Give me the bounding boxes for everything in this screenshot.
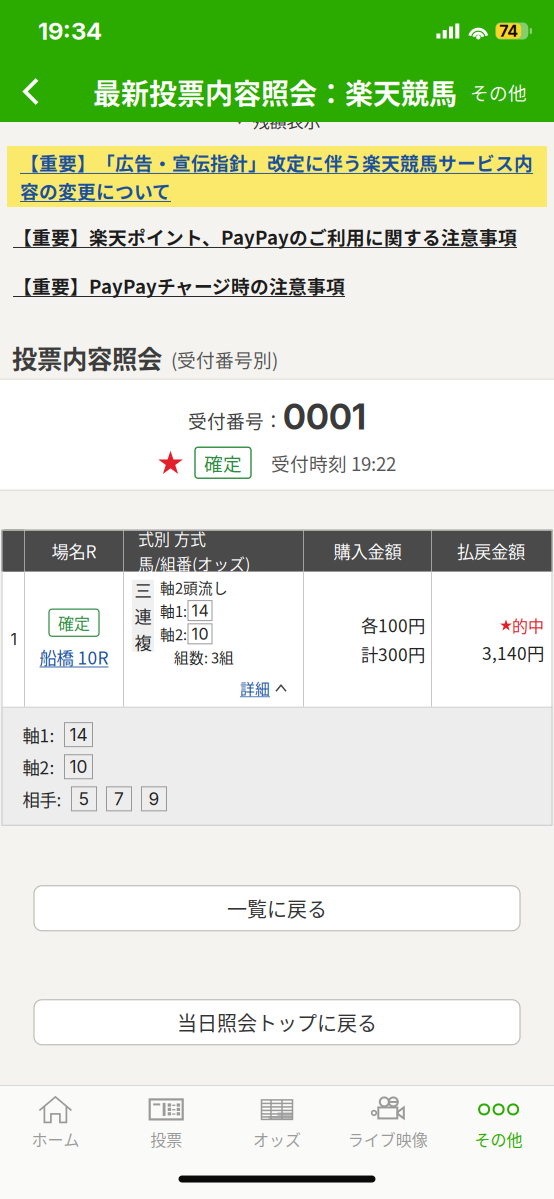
staticText: 受付番号： [188, 407, 283, 434]
staticText: 投票内容照会 [12, 339, 162, 376]
staticText: 容の変更について [20, 177, 171, 204]
button[interactable]: 船橋 10R [39, 644, 108, 669]
staticText: 7 [114, 788, 124, 809]
staticText: 74 [499, 21, 518, 41]
staticText: 1 [10, 630, 17, 649]
staticText: 10 [191, 624, 208, 644]
button[interactable]: 【重要】「広告・宣伝指針」改定に伴う楽天競馬サービス内 [7, 146, 547, 207]
button[interactable]: 投票 [111, 1086, 222, 1159]
staticText: 計300円 [361, 641, 425, 666]
staticText: 【重要】楽天ポイント、PayPayのご利用に関する注意事項 [13, 223, 517, 250]
staticText: (受付番号別) [171, 346, 278, 373]
staticText: 場名R [51, 538, 96, 563]
button[interactable]: オッズ [222, 1086, 332, 1159]
button[interactable]: 詳細 [160, 670, 300, 707]
staticText: 軸1: [22, 722, 54, 747]
staticText: 9 [148, 788, 159, 809]
staticText: 購入金額 [333, 538, 401, 563]
staticText: 【重要】PayPayチャージ時の注意事項 [13, 272, 345, 299]
staticText: 残額表示 [252, 107, 320, 133]
button[interactable]: ホーム [0, 1086, 111, 1159]
staticText: ホーム [31, 1127, 79, 1151]
staticText: 19:34 [38, 16, 102, 45]
staticText: 10 [69, 756, 87, 777]
staticText: 詳細 [240, 678, 270, 699]
staticText: 払戻金額 [457, 538, 525, 563]
staticText: 的中 [512, 614, 544, 637]
staticText: 0001 [283, 396, 366, 438]
button[interactable]: その他 [462, 60, 554, 123]
button[interactable]: 当日照会トップに戻る [34, 1000, 520, 1045]
staticText: その他 [470, 78, 527, 105]
button[interactable]: 【重要】楽天ポイント、PayPayのご利用に関する注意事項 [0, 223, 554, 250]
staticText: 船橋 10R [39, 644, 108, 669]
staticText: 5 [78, 788, 89, 809]
staticText: 受付時刻 19:22 [271, 449, 396, 476]
staticText: 当日照会トップに戻る [177, 1008, 377, 1037]
staticText: 複 [134, 629, 151, 654]
staticText: 式別 方式 [138, 527, 206, 550]
staticText: ライブ映像 [348, 1127, 428, 1151]
staticText: 【重要】「広告・宣伝指針」改定に伴う楽天競馬サービス内 [20, 149, 533, 176]
staticText: 軸2: [22, 754, 54, 779]
button[interactable]: その他 [443, 1086, 554, 1159]
staticText: 一覧に戻る [227, 894, 327, 923]
button[interactable]: 【重要】PayPayチャージ時の注意事項 [0, 272, 554, 299]
staticText: 軸2: [160, 623, 187, 644]
staticText: 連 [134, 603, 151, 628]
staticText: オッズ [253, 1127, 301, 1151]
staticText: 相手: [22, 786, 61, 811]
staticText: 投票 [150, 1127, 182, 1151]
button[interactable]: 一覧に戻る [34, 886, 520, 931]
staticText: 三 [134, 577, 151, 602]
button[interactable]: ライブ映像 [332, 1086, 443, 1159]
staticText: 確定 [58, 611, 90, 634]
staticText: 軸1: [160, 600, 187, 621]
staticText: 3,140円 [482, 640, 544, 665]
staticText: その他 [475, 1127, 523, 1151]
staticText: ▼ [233, 113, 245, 127]
staticText: 組数: 3組 [174, 646, 234, 668]
staticText: 14 [69, 724, 87, 745]
staticText: 馬/組番(オッズ) [138, 552, 250, 575]
button[interactable]: Back [0, 62, 55, 121]
staticText: 最新投票内容照会：楽天競馬 [93, 72, 457, 112]
staticText: 14 [191, 601, 208, 620]
staticText: 軸2頭流し [160, 577, 228, 598]
staticText: 確定 [204, 449, 242, 476]
staticText: 各100円 [361, 612, 425, 637]
